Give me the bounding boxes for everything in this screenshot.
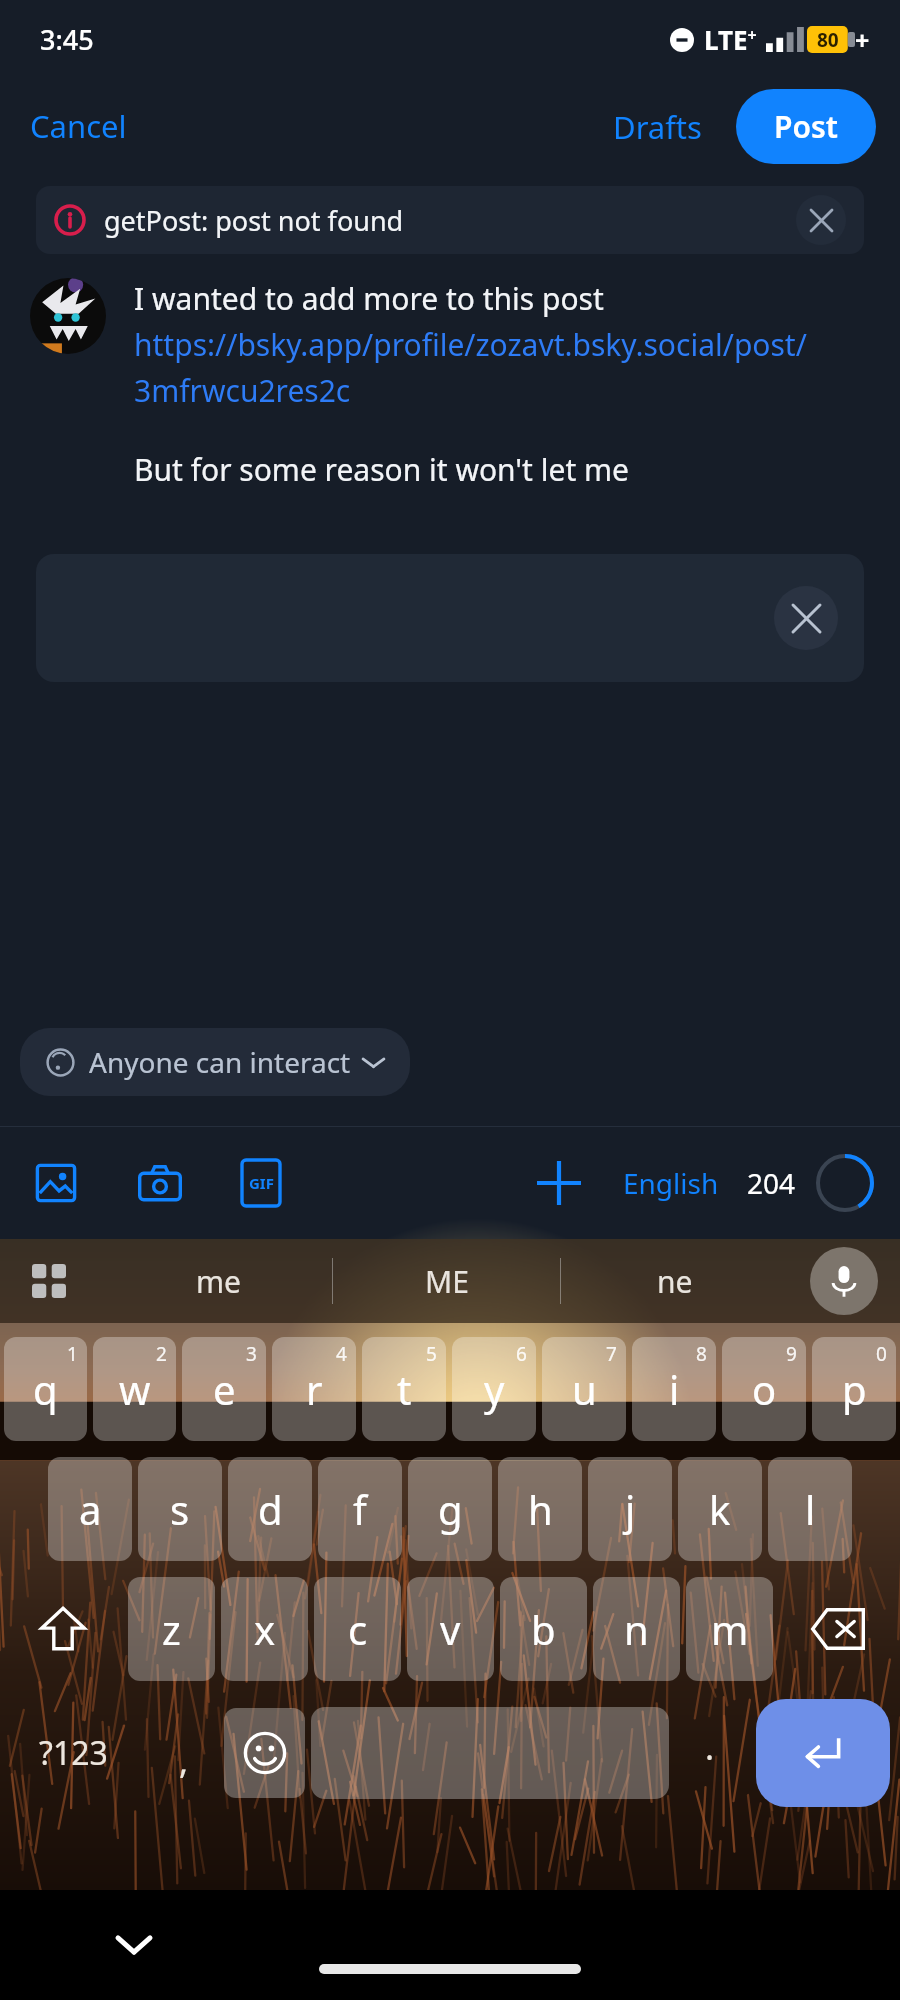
staticText: ME bbox=[425, 1261, 469, 1302]
staticText: ?123 bbox=[39, 1731, 108, 1775]
button[interactable]: getPost: post not found bbox=[36, 186, 864, 254]
button[interactable]: i bbox=[632, 1337, 716, 1441]
staticText: 9 bbox=[786, 1341, 797, 1367]
staticText: i bbox=[669, 1362, 680, 1416]
button[interactable]: Shift bbox=[4, 1577, 122, 1681]
button[interactable]: d bbox=[228, 1457, 312, 1561]
staticText: k bbox=[709, 1482, 731, 1536]
button[interactable]: Drafts bbox=[599, 94, 716, 160]
staticText: Cancel bbox=[30, 105, 127, 147]
button[interactable]: , bbox=[149, 1697, 218, 1809]
staticText: a bbox=[79, 1482, 102, 1536]
button[interactable]: l bbox=[768, 1457, 852, 1561]
staticText: getPost: post not found bbox=[104, 202, 404, 239]
button[interactable]: Add GIF bbox=[234, 1152, 288, 1214]
staticText: But for some reason it won't let me bbox=[134, 449, 629, 490]
staticText: u bbox=[572, 1362, 597, 1416]
button[interactable]: ne bbox=[561, 1239, 788, 1323]
staticText: LTE+ bbox=[704, 22, 757, 57]
button[interactable]: Backspace bbox=[779, 1577, 896, 1681]
staticText: p bbox=[842, 1362, 867, 1416]
staticText: w bbox=[119, 1362, 151, 1416]
staticText: GIF bbox=[249, 1173, 274, 1193]
button[interactable]: a bbox=[48, 1457, 132, 1561]
staticText: 7 bbox=[606, 1341, 617, 1367]
button[interactable]: y bbox=[452, 1337, 536, 1441]
button[interactable]: Camera bbox=[130, 1153, 190, 1213]
button[interactable]: Post bbox=[736, 89, 876, 164]
button[interactable]: Cancel bbox=[0, 93, 145, 159]
button[interactable]: x bbox=[221, 1577, 308, 1681]
button[interactable]: English bbox=[623, 1154, 719, 1212]
button[interactable]: w bbox=[93, 1337, 176, 1441]
button[interactable]: g bbox=[408, 1457, 492, 1561]
button[interactable]: Remove embed bbox=[774, 586, 838, 650]
staticText: e bbox=[213, 1362, 236, 1416]
button[interactable]: Enter bbox=[756, 1699, 890, 1807]
button[interactable]: me bbox=[104, 1239, 332, 1323]
button[interactable]: q bbox=[4, 1337, 87, 1441]
button[interactable]: Keyboard menu bbox=[22, 1254, 76, 1308]
button[interactable]: m bbox=[686, 1577, 773, 1681]
staticText: d bbox=[258, 1482, 283, 1536]
staticText: x bbox=[254, 1602, 276, 1656]
staticText: 5 bbox=[426, 1341, 437, 1367]
button[interactable]: Dismiss error bbox=[796, 195, 846, 245]
button[interactable]: ME bbox=[333, 1239, 560, 1323]
staticText: t bbox=[397, 1362, 412, 1416]
staticText: 4 bbox=[336, 1341, 347, 1367]
staticText: v bbox=[440, 1602, 461, 1656]
button[interactable]: p bbox=[812, 1337, 896, 1441]
button[interactable]: b bbox=[500, 1577, 587, 1681]
staticText: j bbox=[625, 1482, 636, 1536]
button[interactable]: f bbox=[318, 1457, 402, 1561]
button[interactable]: . bbox=[675, 1697, 744, 1809]
button[interactable]: Add image bbox=[26, 1153, 86, 1213]
button[interactable]: Add another post bbox=[529, 1153, 589, 1213]
button[interactable]: Hide keyboard bbox=[108, 1919, 160, 1971]
staticText: me bbox=[196, 1261, 241, 1302]
button[interactable]: k bbox=[678, 1457, 762, 1561]
button[interactable]: t bbox=[362, 1337, 446, 1441]
button[interactable]: s bbox=[138, 1457, 222, 1561]
staticText: c bbox=[348, 1602, 368, 1656]
staticText: f bbox=[353, 1482, 367, 1536]
button[interactable]: ?123 bbox=[4, 1697, 143, 1809]
button[interactable]: Voice input bbox=[810, 1247, 878, 1315]
staticText: 8 bbox=[696, 1341, 707, 1367]
staticText: m bbox=[711, 1602, 749, 1656]
button[interactable]: r bbox=[272, 1337, 356, 1441]
staticText: s bbox=[170, 1482, 190, 1536]
staticText: Drafts bbox=[613, 106, 702, 148]
button[interactable]: n bbox=[593, 1577, 680, 1681]
button[interactable]: o bbox=[722, 1337, 806, 1441]
staticText: + bbox=[855, 23, 870, 57]
staticText: 0 bbox=[876, 1341, 887, 1367]
staticText: . bbox=[705, 1724, 715, 1770]
button[interactable]: v bbox=[407, 1577, 494, 1681]
staticText: 3:45 bbox=[40, 21, 94, 58]
button[interactable]: Emoji bbox=[224, 1708, 305, 1798]
staticText: b bbox=[531, 1602, 556, 1656]
button[interactable]: c bbox=[314, 1577, 401, 1681]
staticText: Anyone can interact bbox=[89, 1043, 351, 1081]
button[interactable]: j bbox=[588, 1457, 672, 1561]
staticText: 80 bbox=[817, 27, 839, 53]
staticText: n bbox=[624, 1602, 649, 1656]
button[interactable]: u bbox=[542, 1337, 626, 1441]
staticText: English bbox=[623, 1164, 719, 1202]
staticText: r bbox=[306, 1362, 323, 1416]
staticText: 6 bbox=[516, 1341, 527, 1367]
staticText: g bbox=[438, 1482, 463, 1536]
staticText: 204 bbox=[747, 1164, 796, 1202]
staticText: 1 bbox=[67, 1341, 78, 1367]
staticText: l bbox=[805, 1482, 816, 1536]
button[interactable]: Space bbox=[311, 1707, 669, 1799]
staticText: ne bbox=[657, 1261, 693, 1302]
button[interactable]: h bbox=[498, 1457, 582, 1561]
button[interactable]: Anyone can interact bbox=[20, 1028, 410, 1096]
staticText: q bbox=[33, 1362, 58, 1416]
button[interactable]: e bbox=[182, 1337, 266, 1441]
staticText: I wanted to add more to this post https:… bbox=[134, 278, 874, 411]
button[interactable]: z bbox=[128, 1577, 215, 1681]
